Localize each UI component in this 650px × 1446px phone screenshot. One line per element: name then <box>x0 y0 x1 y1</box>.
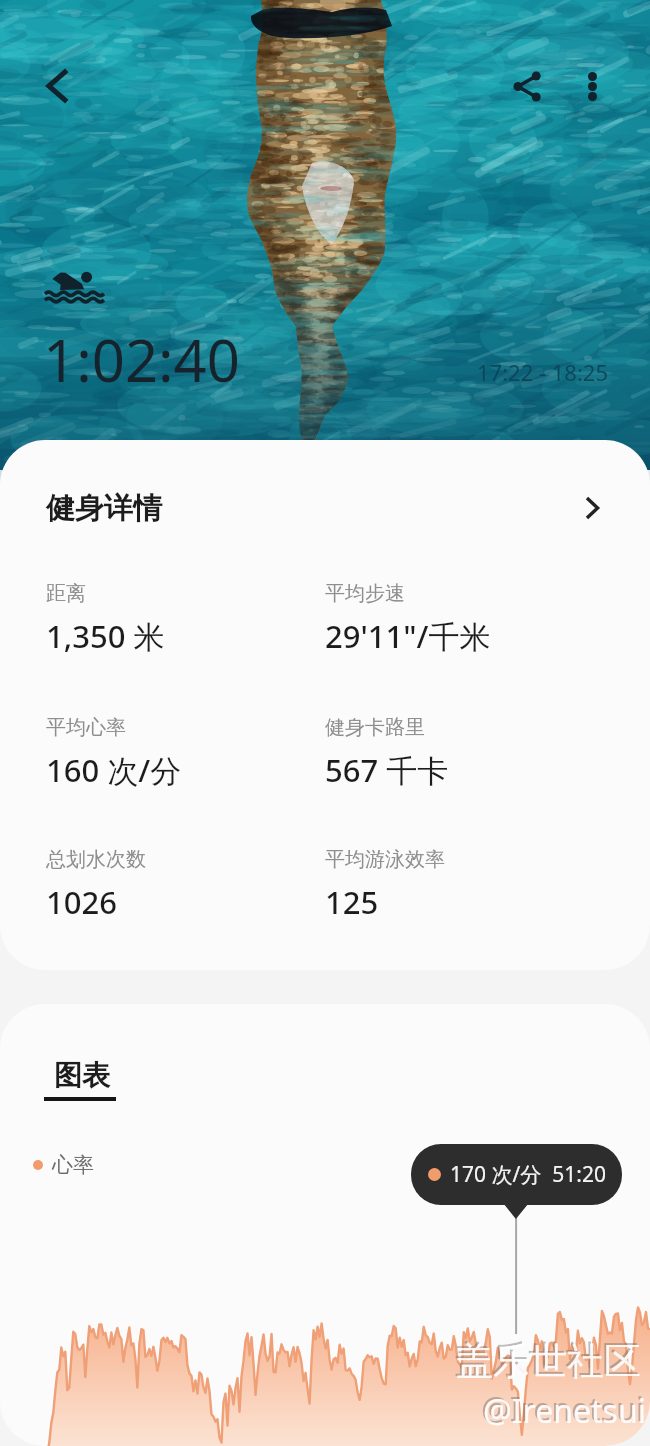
staticText: 17:22 - 18:25 <box>477 357 608 387</box>
button[interactable]: 心率 <box>33 1152 94 1178</box>
staticText: 29'11"/千米 <box>325 615 491 657</box>
button[interactable]: Back <box>28 58 84 114</box>
staticText: 567 千卡 <box>325 749 449 791</box>
staticText: 1,350 米 <box>46 615 165 657</box>
staticText: 盖乐世社区 <box>456 1338 641 1385</box>
button[interactable]: 170 次/分 51:20 <box>411 1144 622 1205</box>
staticText: 1026 <box>46 881 117 923</box>
staticText: 心率 <box>52 1152 94 1178</box>
staticText: 平均步速 <box>325 581 405 606</box>
staticText: @Irenetsui <box>483 1389 646 1433</box>
staticText: @Irenetsui <box>481 1387 644 1431</box>
staticText: 1:02:40 <box>43 320 240 399</box>
staticText: 盖乐世社区 <box>454 1336 639 1383</box>
staticText: 平均心率 <box>46 715 126 740</box>
staticText: 图表 <box>54 1058 110 1093</box>
staticText: 125 <box>325 881 379 923</box>
staticText: 总划水次数 <box>46 847 146 872</box>
button[interactable]: More options <box>564 58 620 114</box>
button[interactable]: Share <box>499 58 555 114</box>
staticText: 平均游泳效率 <box>325 847 445 872</box>
button[interactable]: 健身详情 <box>0 480 650 536</box>
staticText: 距离 <box>46 581 86 606</box>
button[interactable]: 图表 <box>44 1058 116 1101</box>
staticText: 160 次/分 <box>46 749 182 791</box>
staticText: 健身详情 <box>46 490 162 527</box>
staticText: 170 次/分 51:20 <box>450 1160 606 1189</box>
staticText: 健身卡路里 <box>325 715 425 740</box>
